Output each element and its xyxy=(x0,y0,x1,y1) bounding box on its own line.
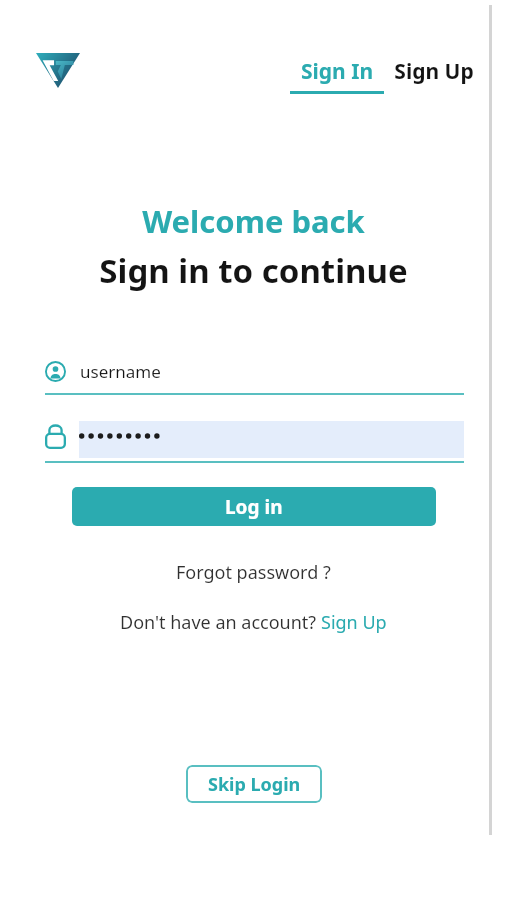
staticText: username xyxy=(80,360,161,383)
staticText: Don't have an account? xyxy=(120,610,321,635)
staticText: Sign Up xyxy=(392,57,476,86)
button[interactable] xyxy=(45,411,464,463)
button[interactable]: Skip Login xyxy=(186,765,322,803)
staticText: Welcome back xyxy=(142,200,365,242)
staticText: Log in xyxy=(225,494,283,520)
button[interactable]: Sign Up xyxy=(321,610,387,635)
staticText: Sign in to continue xyxy=(99,248,408,293)
button[interactable]: Log in xyxy=(72,487,436,526)
staticText: Skip Login xyxy=(208,772,301,797)
staticText: Sign In xyxy=(290,57,384,86)
staticText: Sign Up xyxy=(321,610,387,635)
button[interactable]: App logo xyxy=(36,53,80,88)
staticText: Forgot password ? xyxy=(176,560,331,585)
button[interactable]: Forgot password ? xyxy=(176,560,331,585)
button[interactable]: Sign In xyxy=(290,57,384,94)
button[interactable]: Sign Up xyxy=(392,57,476,86)
button[interactable]: username xyxy=(45,352,464,395)
